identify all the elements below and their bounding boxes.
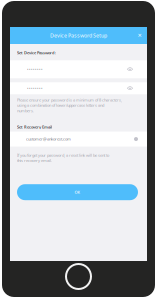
- button[interactable]: OK: [17, 184, 138, 200]
- button[interactable]: Close: [132, 27, 147, 44]
- button[interactable]: Password field: [10, 60, 147, 78]
- staticText: ••••••••: [27, 86, 43, 91]
- staticText: customer@ankorest.com: [26, 136, 71, 142]
- button[interactable]: Password field: [10, 82, 147, 94]
- staticText: Set Device Password:: [17, 50, 56, 55]
- staticText: Set Recovery Email: [17, 124, 52, 129]
- button[interactable]: Recovery email field: [10, 132, 147, 147]
- staticText: ✕: [137, 32, 141, 39]
- staticText: Device Password Setup: [50, 32, 107, 39]
- staticText: OK: [74, 189, 80, 195]
- staticText: If you forget your password, a reset lin…: [17, 153, 109, 163]
- staticText: ••••••••: [27, 67, 43, 72]
- staticText: Please ensure your password is a minimum…: [17, 97, 122, 113]
